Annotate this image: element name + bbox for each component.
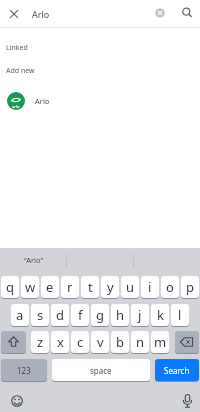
staticText: f bbox=[78, 306, 83, 324]
staticText: y bbox=[107, 278, 114, 296]
button[interactable]: q bbox=[1, 276, 19, 298]
button[interactable]: n bbox=[131, 331, 149, 353]
staticText: Arlo bbox=[32, 8, 50, 20]
button[interactable]: o bbox=[161, 276, 179, 298]
staticText: b bbox=[116, 333, 124, 351]
staticText: Search bbox=[164, 365, 190, 376]
staticText: r bbox=[67, 278, 73, 296]
staticText: w bbox=[25, 278, 36, 296]
button[interactable]: z bbox=[31, 331, 49, 353]
staticText: c bbox=[77, 333, 84, 351]
button[interactable] bbox=[153, 6, 167, 20]
staticText: i bbox=[148, 278, 152, 296]
button[interactable]: s bbox=[31, 304, 49, 326]
staticText: x bbox=[57, 333, 64, 351]
button[interactable] bbox=[175, 331, 199, 353]
staticText: v bbox=[97, 333, 104, 351]
button[interactable] bbox=[179, 4, 196, 21]
button[interactable]: u bbox=[121, 276, 139, 298]
staticText: o bbox=[166, 278, 174, 296]
button[interactable]: 123 bbox=[1, 359, 47, 381]
button[interactable]: v bbox=[91, 331, 109, 353]
staticText: space bbox=[90, 365, 112, 376]
button[interactable]: y bbox=[101, 276, 119, 298]
staticText: m bbox=[154, 333, 167, 351]
button[interactable] bbox=[9, 393, 25, 409]
staticText: Arlo bbox=[35, 96, 50, 106]
staticText: arlo bbox=[12, 104, 20, 109]
staticText: e bbox=[46, 278, 54, 296]
button[interactable]: Search bbox=[155, 359, 199, 381]
button[interactable]: t bbox=[81, 276, 99, 298]
button[interactable]: f bbox=[71, 304, 89, 326]
staticText: z bbox=[37, 333, 44, 351]
button[interactable]: h bbox=[111, 304, 129, 326]
button[interactable]: i bbox=[141, 276, 159, 298]
staticText: a bbox=[16, 306, 24, 324]
staticText: q bbox=[6, 278, 14, 296]
staticText: t bbox=[88, 278, 93, 296]
button[interactable]: arlo bbox=[0, 86, 200, 116]
button[interactable] bbox=[179, 392, 196, 410]
staticText: n bbox=[136, 333, 145, 351]
staticText: 123 bbox=[17, 365, 31, 376]
button[interactable]: space bbox=[52, 359, 150, 381]
staticText: Linked bbox=[6, 43, 28, 53]
staticText: h bbox=[116, 306, 125, 324]
staticText: l bbox=[178, 306, 182, 324]
staticText: j bbox=[138, 306, 142, 324]
button[interactable]: l bbox=[171, 304, 189, 326]
button[interactable]: c bbox=[71, 331, 89, 353]
staticText: Add new bbox=[6, 66, 35, 76]
button[interactable]: w bbox=[21, 276, 39, 298]
button[interactable] bbox=[5, 5, 23, 23]
staticText: u bbox=[126, 278, 135, 296]
button[interactable]: x bbox=[51, 331, 69, 353]
staticText: d bbox=[56, 306, 64, 324]
button[interactable]: “Arlo” bbox=[0, 249, 67, 271]
button[interactable]: m bbox=[151, 331, 169, 353]
button[interactable]: a bbox=[11, 304, 29, 326]
button[interactable]: b bbox=[111, 331, 129, 353]
staticText: k bbox=[157, 306, 164, 324]
staticText: s bbox=[37, 306, 44, 324]
staticText: “Arlo” bbox=[24, 255, 44, 265]
button[interactable] bbox=[1, 331, 26, 353]
button[interactable]: j bbox=[131, 304, 149, 326]
button[interactable]: g bbox=[91, 304, 109, 326]
button[interactable]: r bbox=[61, 276, 79, 298]
button[interactable]: k bbox=[151, 304, 169, 326]
button[interactable]: d bbox=[51, 304, 69, 326]
button[interactable]: e bbox=[41, 276, 59, 298]
button[interactable]: p bbox=[181, 276, 199, 298]
staticText: p bbox=[186, 278, 194, 296]
staticText: g bbox=[96, 306, 104, 324]
